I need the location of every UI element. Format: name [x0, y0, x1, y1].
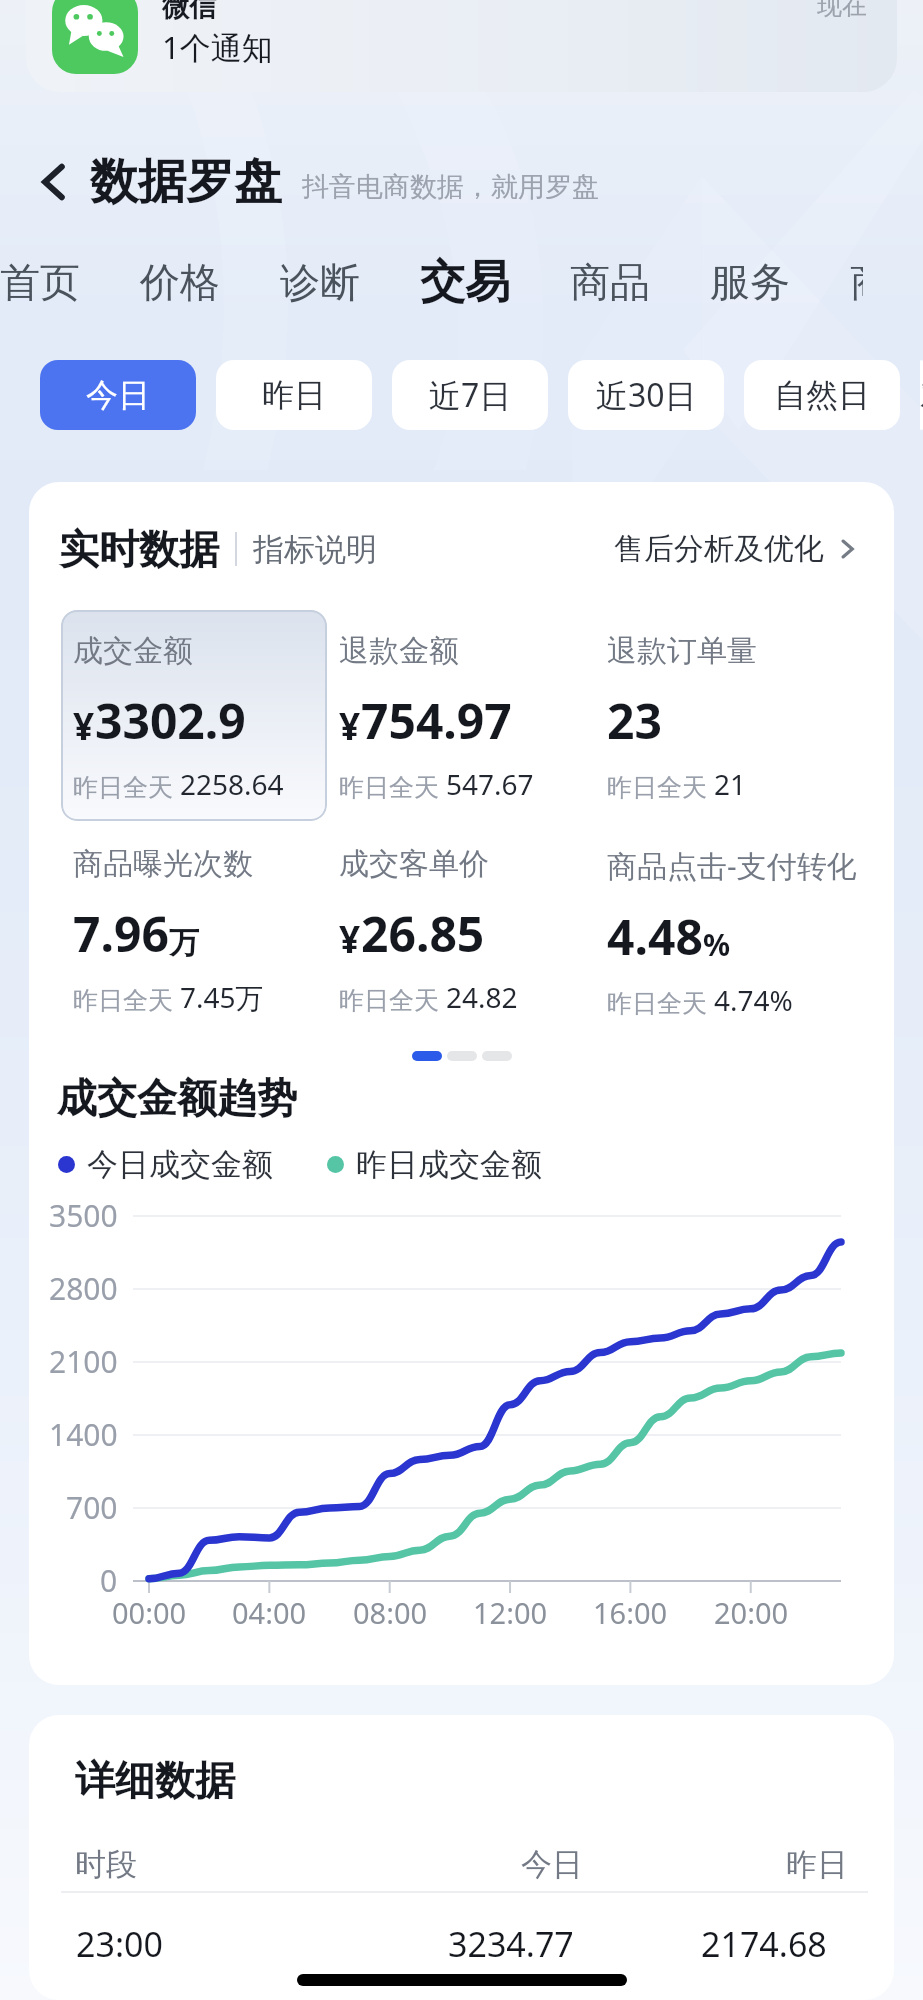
staticText: 售后分析及优化 [614, 530, 824, 568]
staticText: 4.48 [607, 904, 703, 969]
staticText: 12:00 [473, 1593, 548, 1632]
staticText: ¥ [339, 913, 361, 963]
staticText: 商品曝光次数 [73, 845, 253, 883]
staticText: 现在 [817, 0, 867, 21]
button[interactable]: 服务 [680, 246, 820, 318]
staticText: 1400 [49, 1414, 118, 1455]
staticText: 自然日 [774, 375, 870, 415]
staticText: 数据罗盘 [90, 152, 282, 212]
staticText: 今日成交金额 [87, 1145, 273, 1184]
staticText: 商品点击-支付转化 [607, 845, 857, 886]
button[interactable]: 商品 [540, 246, 680, 318]
staticText: 0 [100, 1560, 118, 1601]
staticText: 交易 [420, 254, 510, 311]
staticText: 昨日全天 [73, 985, 173, 1016]
staticText: 23:00 [76, 1921, 163, 1967]
staticText: 时段 [75, 1845, 137, 1884]
button[interactable]: 成交金额 [61, 610, 327, 821]
staticText: 7.45万 [180, 978, 264, 1016]
button[interactable]: 成交客单价 [327, 823, 595, 1034]
staticText: 今日 [521, 1845, 583, 1884]
staticText: 昨日 [786, 1845, 848, 1884]
staticText: 700 [66, 1487, 118, 1528]
staticText: 26.85 [361, 901, 485, 966]
button[interactable]: 退款金额 [327, 610, 595, 821]
staticText: 2100 [49, 1341, 118, 1382]
staticText: 成交客单价 [339, 845, 489, 883]
button[interactable]: 自然日 [744, 360, 900, 430]
staticText: 04:00 [232, 1593, 307, 1632]
staticText: 3302.9 [95, 688, 246, 753]
staticText: 指标说明 [253, 530, 377, 569]
staticText: 诊断 [280, 257, 360, 307]
staticText: 万 [169, 924, 199, 962]
staticText: 21 [714, 765, 747, 803]
staticText: ¥ [339, 700, 361, 750]
staticText: 对比 [920, 375, 923, 415]
staticText: 服务 [710, 257, 790, 307]
staticText: 近30日 [596, 373, 697, 417]
staticText: 547.67 [446, 765, 534, 803]
staticText: 4.74% [714, 981, 793, 1019]
staticText: 实时数据 [59, 524, 219, 574]
staticText: ¥ [73, 700, 95, 750]
staticText: 23 [607, 688, 662, 753]
staticText: 2174.68 [701, 1921, 827, 1967]
staticText: 20:00 [714, 1593, 789, 1632]
staticText: 08:00 [353, 1593, 428, 1632]
staticText: 昨日成交金额 [356, 1145, 542, 1184]
staticText: 首页 [0, 257, 80, 307]
button[interactable]: 退款订单量 [595, 610, 892, 821]
button[interactable]: 诊断 [250, 246, 390, 318]
staticText: 昨日全天 [73, 772, 173, 803]
button[interactable]: 对比 [920, 360, 923, 430]
staticText: 24.82 [446, 978, 518, 1016]
staticText: 抖音电商数据，就用罗盘 [302, 170, 599, 204]
staticText: 16:00 [593, 1593, 668, 1632]
staticText: 1个通知 [162, 26, 273, 68]
button[interactable]: 商品卡 [820, 246, 893, 318]
button[interactable]: 近7日 [392, 360, 548, 430]
staticText: 商品卡 [850, 257, 863, 307]
staticText: 2258.64 [180, 765, 284, 803]
staticText: % [703, 924, 731, 965]
staticText: 2800 [49, 1268, 118, 1309]
staticText: 退款订单量 [607, 632, 757, 670]
staticText: 754.97 [361, 688, 512, 753]
button[interactable]: 首页 [0, 246, 110, 318]
staticText: 成交金额趋势 [57, 1073, 297, 1123]
staticText: 昨日 [262, 375, 326, 415]
button[interactable]: 交易 [390, 246, 540, 318]
staticText: 3234.77 [448, 1921, 574, 1967]
staticText: 商品 [570, 257, 650, 307]
button[interactable]: 今日 [40, 360, 196, 430]
staticText: 昨日全天 [607, 988, 707, 1019]
staticText: 微信 [162, 0, 216, 24]
staticText: 详细数据 [75, 1755, 235, 1805]
button[interactable]: 售后分析及优化 [614, 530, 858, 568]
staticText: 昨日全天 [339, 772, 439, 803]
staticText: 00:00 [112, 1593, 187, 1632]
button[interactable]: 微信 [26, 0, 897, 92]
button[interactable]: 价格 [110, 246, 250, 318]
staticText: 成交金额 [73, 632, 193, 670]
staticText: 近7日 [429, 373, 512, 417]
staticText: 今日 [86, 375, 150, 415]
button[interactable]: 昨日 [216, 360, 372, 430]
button[interactable]: 商品曝光次数 [61, 823, 327, 1034]
staticText: 3500 [49, 1195, 118, 1236]
staticText: 昨日全天 [339, 985, 439, 1016]
staticText: 价格 [140, 257, 220, 307]
button[interactable]: Back [26, 155, 80, 209]
staticText: 退款金额 [339, 632, 459, 670]
button[interactable]: 近30日 [568, 360, 724, 430]
staticText: 昨日全天 [607, 772, 707, 803]
staticText: 7.96 [73, 901, 169, 966]
button[interactable]: 商品点击-支付转化 [595, 823, 892, 1037]
